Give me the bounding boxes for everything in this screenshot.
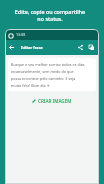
staticText: Editar frase (21, 45, 43, 50)
staticText: Edite, copie ou compartilhe no status. (0, 8, 102, 23)
staticText: Busque o seu melhor sorriso todos os dia… (11, 62, 85, 88)
staticText: 13:08 (16, 32, 26, 37)
button[interactable]: CRIAR IMAGEM (29, 96, 75, 106)
button[interactable]: Share (75, 42, 86, 53)
button[interactable]: Copy (86, 42, 97, 53)
staticText: CRIAR IMAGEM (38, 98, 72, 104)
button[interactable]: Back (5, 41, 18, 54)
